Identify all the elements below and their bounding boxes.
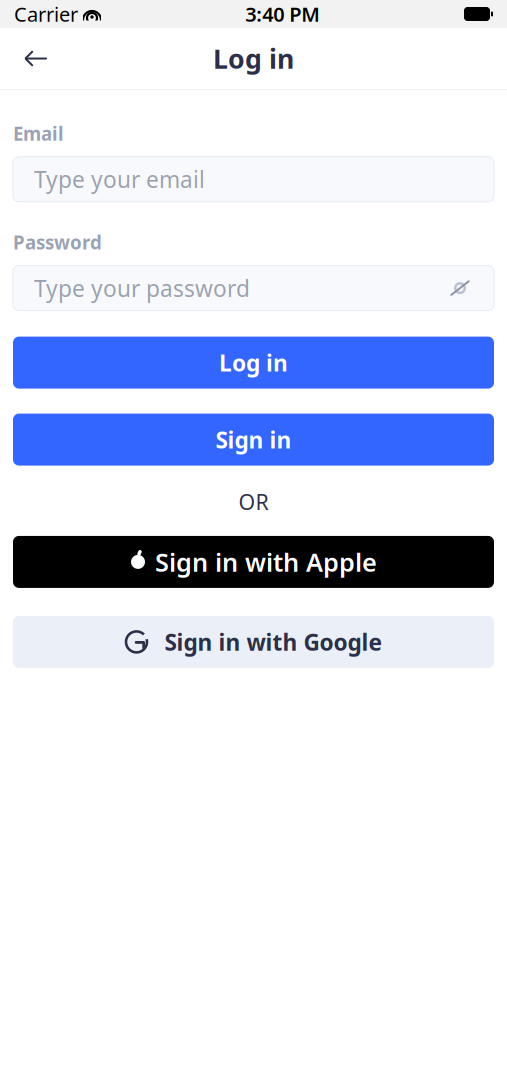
button[interactable]: Back <box>13 35 59 81</box>
staticText: Log in <box>213 41 294 76</box>
staticText: Log in <box>219 347 288 378</box>
button[interactable]: Sign in <box>13 414 494 466</box>
staticText: Sign in with Apple <box>155 545 377 579</box>
staticText: Password <box>13 230 102 255</box>
button[interactable]: Log in <box>13 337 494 389</box>
staticText: Type your email <box>34 164 205 194</box>
staticText: OR <box>238 488 268 516</box>
staticText: Carrier <box>14 1 78 27</box>
staticText: Sign in <box>215 424 291 455</box>
button[interactable]: Sign in with Google <box>13 616 494 668</box>
button[interactable]: Sign in with Apple <box>13 536 494 588</box>
staticText: Sign in with Google <box>164 627 382 657</box>
staticText: 3:40 PM <box>245 1 320 27</box>
staticText: Email <box>13 121 64 146</box>
staticText: Type your password <box>34 273 250 303</box>
